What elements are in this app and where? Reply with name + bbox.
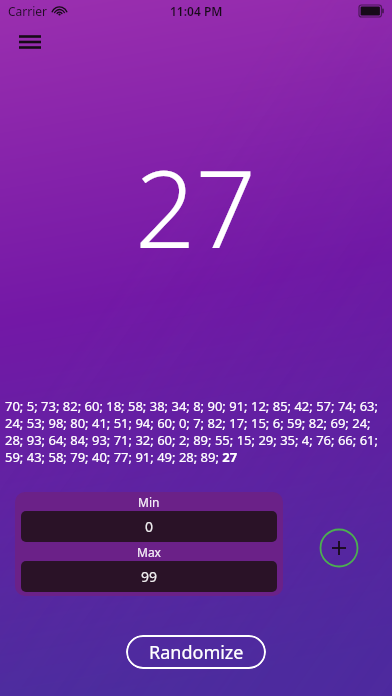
staticText: Max — [137, 544, 161, 560]
staticText: 11:04 PM — [170, 3, 223, 19]
button[interactable]: Randomize — [126, 635, 266, 669]
staticText: 99 — [141, 567, 158, 586]
staticText: 70; 5; 73; 82; 60; 18; 58; 38; 34; 8; 90… — [5, 397, 387, 466]
button[interactable]: 99 — [21, 561, 277, 592]
button[interactable]: Menu — [8, 26, 52, 58]
staticText: Min — [138, 494, 160, 510]
staticText: Randomize — [149, 640, 244, 665]
button[interactable]: Add — [319, 528, 359, 568]
button[interactable]: 0 — [21, 511, 277, 542]
staticText: Carrier — [8, 3, 48, 19]
staticText: 0 — [145, 517, 154, 536]
staticText: 27 — [135, 135, 257, 279]
